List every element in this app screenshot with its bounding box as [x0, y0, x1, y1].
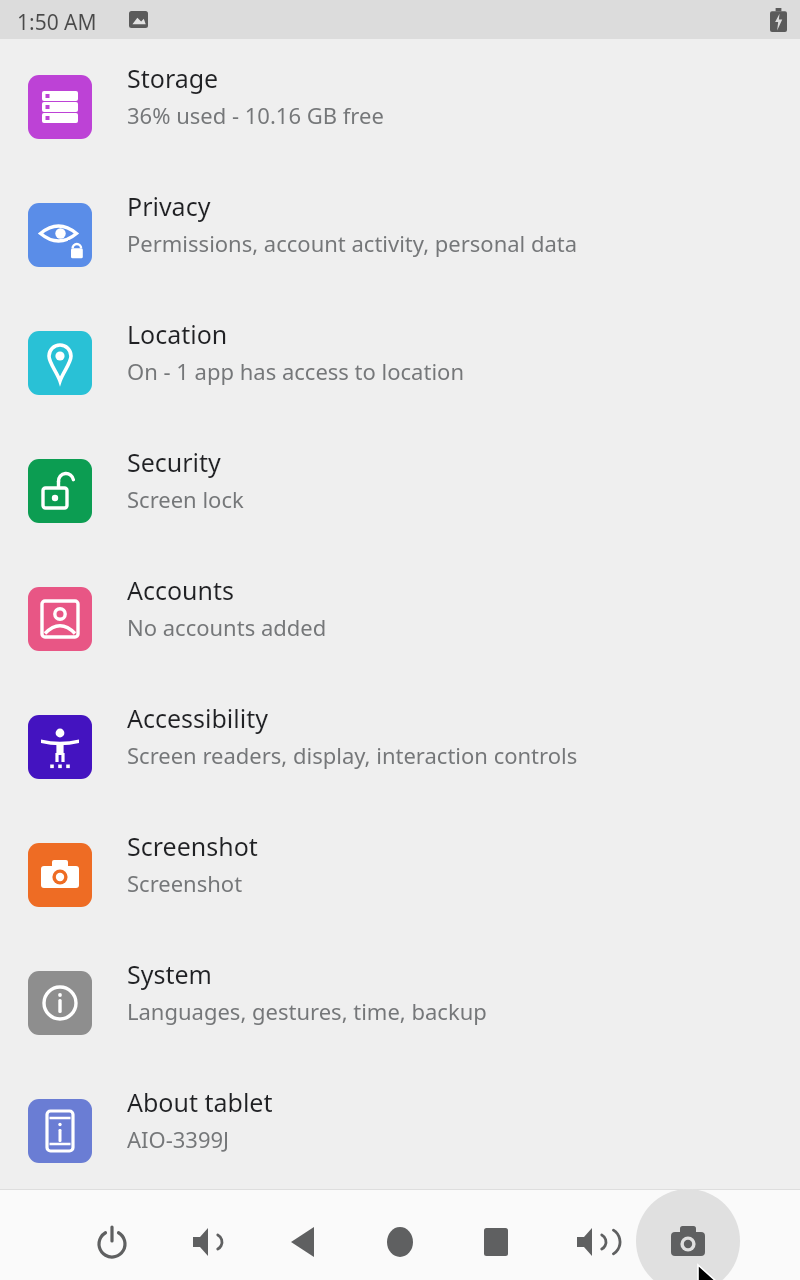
button[interactable]: Home — [366, 1208, 434, 1276]
staticText: Screen readers, display, interaction con… — [127, 740, 578, 770]
button[interactable]: Storage — [0, 39, 800, 167]
button[interactable]: Screenshot — [0, 807, 800, 935]
staticText: System — [127, 957, 212, 991]
staticText: Languages, gestures, time, backup — [127, 996, 487, 1026]
button[interactable]: Accounts — [0, 551, 800, 679]
staticText: Screenshot — [127, 829, 258, 863]
staticText: Security — [127, 445, 221, 479]
staticText: No accounts added — [127, 612, 327, 642]
staticText: 36% used - 10.16 GB free — [127, 100, 384, 130]
button[interactable]: Volume down — [174, 1208, 242, 1276]
staticText: About tablet — [127, 1085, 273, 1119]
staticText: AIO-3399J — [127, 1124, 230, 1154]
button[interactable]: Screenshot — [654, 1208, 722, 1276]
button[interactable]: Privacy — [0, 167, 800, 295]
staticText: Accessibility — [127, 701, 268, 735]
button[interactable]: About tablet — [0, 1063, 800, 1191]
button[interactable]: Recent apps — [462, 1208, 530, 1276]
staticText: Storage — [127, 61, 219, 95]
staticText: Screen lock — [127, 484, 244, 514]
staticText: Privacy — [127, 189, 211, 223]
staticText: Screenshot — [127, 868, 243, 898]
button[interactable]: Security — [0, 423, 800, 551]
staticText: Accounts — [127, 573, 235, 607]
button[interactable]: Location — [0, 295, 800, 423]
button[interactable]: Volume up — [558, 1208, 626, 1276]
button[interactable]: Power — [78, 1208, 146, 1276]
staticText: Location — [127, 317, 228, 351]
staticText: On - 1 app has access to location — [127, 356, 464, 386]
staticText: Permissions, account activity, personal … — [127, 228, 578, 258]
button[interactable]: Accessibility — [0, 679, 800, 807]
button[interactable]: Back — [270, 1208, 338, 1276]
button[interactable]: System — [0, 935, 800, 1063]
staticText: 1:50 AM — [17, 8, 97, 37]
